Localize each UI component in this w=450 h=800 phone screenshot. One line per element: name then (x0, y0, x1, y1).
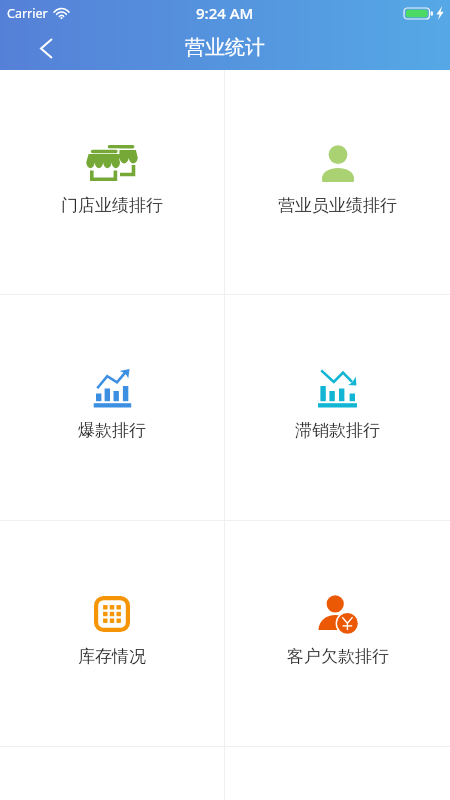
button[interactable]: 客户欠款排行 (225, 521, 450, 746)
button[interactable]: 营业员业绩排行 (225, 70, 450, 294)
staticText: 爆款排行 (78, 420, 146, 441)
button[interactable]: 库存情况 (0, 521, 224, 746)
staticText: 营业统计 (185, 35, 265, 60)
button[interactable]: 爆款排行 (0, 295, 224, 520)
staticText: 库存情况 (78, 646, 146, 667)
button[interactable]: Back (0, 27, 70, 70)
staticText: 滞销款排行 (295, 420, 380, 441)
button[interactable]: 滞销款排行 (225, 295, 450, 520)
staticText: Carrier (7, 5, 48, 22)
button[interactable]: 门店业绩排行 (0, 70, 224, 294)
staticText: 9:24 AM (196, 3, 254, 23)
staticText: 营业员业绩排行 (278, 195, 397, 216)
staticText: 门店业绩排行 (61, 195, 163, 216)
staticText: 客户欠款排行 (287, 646, 389, 667)
